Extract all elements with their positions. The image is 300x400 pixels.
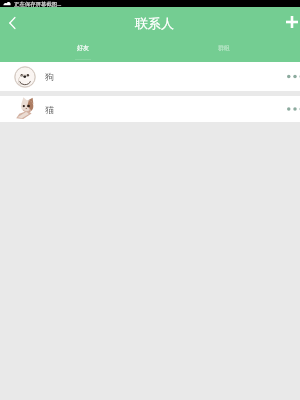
staticText: 猫 — [45, 104, 54, 115]
button[interactable]: 猫 — [0, 96, 300, 122]
button[interactable]: 狗 — [0, 62, 300, 91]
button[interactable]: More options — [286, 96, 300, 122]
button[interactable]: Add contact — [283, 10, 300, 34]
staticText: 联系人 — [135, 15, 174, 31]
button[interactable]: 群组 — [150, 38, 300, 62]
staticText: 正在保存屏幕截图... — [14, 0, 62, 7]
staticText: 好友 — [77, 44, 89, 52]
button[interactable]: More options — [286, 62, 300, 91]
button[interactable]: 好友 — [0, 38, 150, 62]
staticText: 狗 — [45, 71, 54, 82]
button[interactable]: Back — [0, 11, 24, 35]
staticText: 群组 — [218, 44, 230, 52]
